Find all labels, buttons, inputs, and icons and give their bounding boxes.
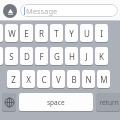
staticText: I [100, 28, 103, 39]
button[interactable]: Apps [3, 4, 17, 18]
button[interactable]: return [96, 93, 120, 111]
button[interactable]: Change keyboard [2, 93, 16, 111]
button[interactable]: G [50, 47, 63, 65]
button[interactable]: B [67, 70, 80, 88]
staticText: C [41, 74, 47, 85]
staticText: Z [11, 74, 16, 85]
button[interactable]: J [80, 47, 93, 65]
button[interactable]: X [22, 70, 35, 88]
staticText: F [39, 51, 44, 62]
button[interactable]: Q [0, 24, 3, 42]
staticText: S [9, 51, 14, 62]
button[interactable]: N [82, 70, 95, 88]
staticText: D [24, 51, 30, 62]
button[interactable]: space [19, 93, 93, 111]
button[interactable]: A [0, 47, 3, 65]
staticText: M [100, 74, 108, 85]
button[interactable]: K [95, 47, 108, 65]
button[interactable]: F [35, 47, 48, 65]
staticText: E [24, 28, 29, 39]
staticText: J [85, 51, 88, 62]
button[interactable]: H [65, 47, 78, 65]
button[interactable]: Message [20, 4, 118, 17]
button[interactable]: U [80, 24, 93, 42]
button[interactable]: Z [7, 70, 20, 88]
staticText: B [71, 74, 77, 85]
staticText: Y [69, 28, 74, 39]
button[interactable]: M [97, 70, 110, 88]
staticText: X [26, 74, 31, 85]
staticText: U [84, 28, 90, 39]
button[interactable]: C [37, 70, 50, 88]
staticText: H [69, 51, 75, 62]
button[interactable]: E [20, 24, 33, 42]
staticText: N [85, 74, 92, 85]
staticText: W [8, 28, 16, 39]
staticText: G [54, 51, 60, 62]
button[interactable]: D [20, 47, 33, 65]
button[interactable]: Y [65, 24, 78, 42]
staticText: V [56, 74, 61, 85]
button[interactable]: V [52, 70, 65, 88]
staticText: Message [26, 6, 58, 16]
button[interactable]: R [35, 24, 48, 42]
staticText: space [47, 98, 65, 107]
staticText: T [54, 28, 59, 39]
staticText: K [99, 51, 104, 62]
button[interactable]: S [5, 47, 18, 65]
button[interactable]: I [95, 24, 108, 42]
button[interactable]: T [50, 24, 63, 42]
button[interactable]: W [5, 24, 18, 42]
staticText: return [96, 98, 119, 107]
staticText: R [39, 28, 44, 39]
